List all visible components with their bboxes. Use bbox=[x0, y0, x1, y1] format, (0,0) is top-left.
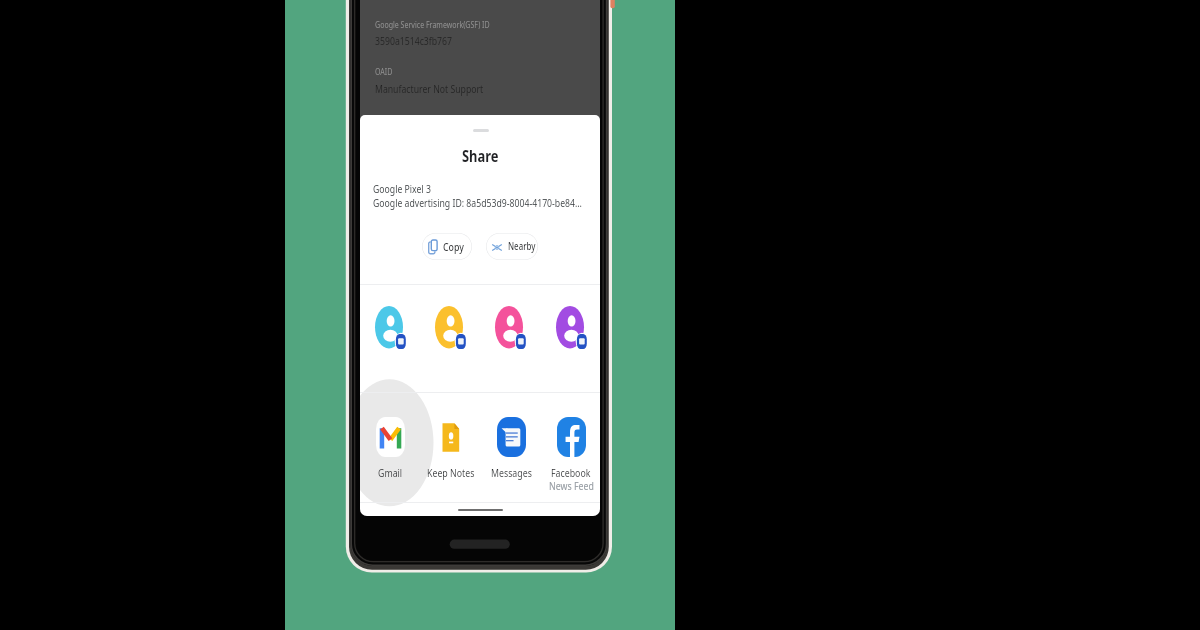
staticText: Nearby bbox=[508, 240, 536, 254]
button[interactable]: Facebook bbox=[541, 408, 600, 494]
staticText: Messages bbox=[491, 466, 532, 481]
button[interactable]: Share with contact bbox=[556, 306, 590, 354]
button[interactable]: Share with contact bbox=[435, 306, 469, 354]
staticText: Google Service Framework(GSF) ID bbox=[375, 18, 490, 30]
button[interactable]: Keep Notes bbox=[421, 408, 481, 494]
button[interactable]: Copy bbox=[422, 233, 472, 260]
staticText: News Feed bbox=[549, 479, 594, 494]
button[interactable]: Share with contact bbox=[375, 306, 409, 354]
staticText: Gmail bbox=[378, 466, 403, 481]
button[interactable]: Messages bbox=[481, 408, 541, 494]
button[interactable]: Nearby bbox=[486, 233, 538, 260]
staticText: 3590a1514c3fb767 bbox=[375, 34, 453, 49]
staticText: Facebook bbox=[551, 466, 591, 481]
staticText: Google Pixel 3 bbox=[373, 182, 431, 197]
staticText: OAID bbox=[375, 65, 393, 77]
staticText: Manufacturer Not Support bbox=[375, 82, 484, 97]
button[interactable]: Collapse sheet bbox=[465, 124, 496, 136]
button[interactable]: Share with contact bbox=[495, 306, 529, 354]
staticText: Share bbox=[462, 145, 499, 167]
staticText: Keep Notes bbox=[427, 466, 475, 481]
staticText: Copy bbox=[443, 240, 464, 255]
staticText: Google advertising ID: 8a5d53d9-8004-417… bbox=[373, 196, 582, 211]
button[interactable]: Gmail bbox=[360, 408, 420, 494]
